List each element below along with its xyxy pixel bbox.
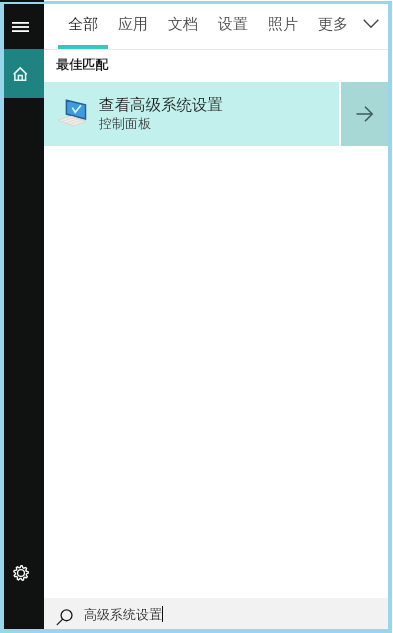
button[interactable]: 查看高级系统设置 (44, 82, 388, 146)
button[interactable]: 更多 (308, 4, 379, 49)
button[interactable]: Menu (4, 4, 44, 49)
button[interactable]: 应用 (108, 4, 158, 49)
staticText: 控制面板 (99, 115, 151, 131)
button[interactable]: 照片 (258, 4, 308, 49)
button[interactable]: 全部 (58, 4, 108, 49)
button[interactable]: 文档 (158, 4, 208, 49)
staticText: 照片 (268, 15, 298, 34)
staticText: 最佳匹配 (56, 56, 108, 72)
staticText: 高级系统设置 (84, 606, 162, 622)
button[interactable]: 设置 (208, 4, 258, 49)
staticText: 应用 (118, 15, 148, 34)
button[interactable]: Home (4, 49, 44, 98)
staticText: 查看高级系统设置 (99, 95, 223, 115)
staticText: 更多 (318, 15, 348, 34)
button[interactable]: 高级系统设置 (44, 598, 388, 629)
button[interactable]: Open (341, 82, 388, 146)
button[interactable]: Settings (4, 549, 44, 597)
staticText: 设置 (218, 15, 248, 34)
staticText: 全部 (68, 15, 98, 34)
staticText: 文档 (168, 15, 198, 34)
